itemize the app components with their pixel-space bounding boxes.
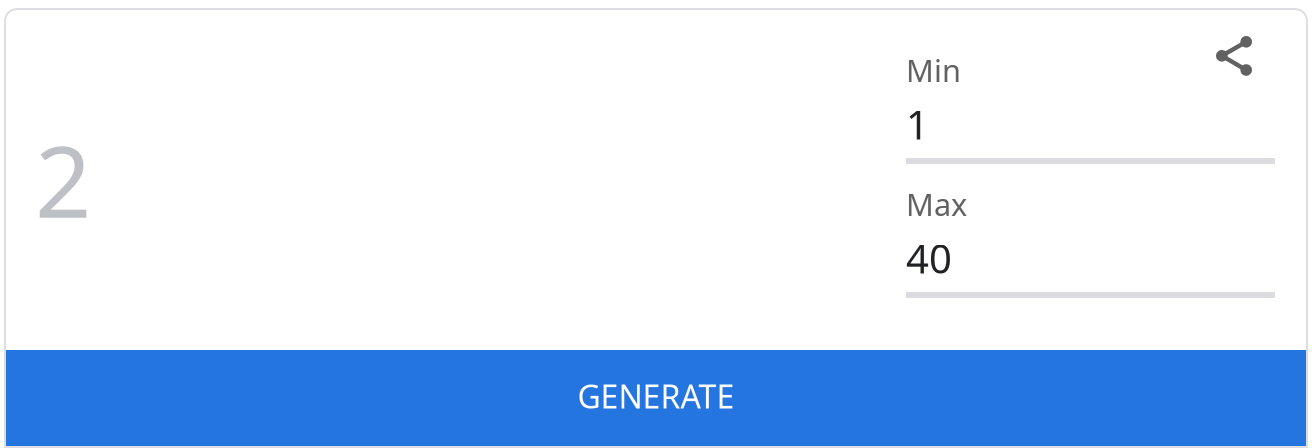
button[interactable]: Min [906,56,1275,164]
staticText: 1 [906,97,929,150]
staticText: Max [906,184,967,224]
button[interactable]: GENERATE [5,350,1307,447]
staticText: 40 [906,231,952,284]
staticText: 2 [35,114,91,245]
staticText: GENERATE [577,375,734,417]
staticText: Min [906,50,961,90]
button[interactable]: Share [1204,24,1264,88]
button[interactable]: Max [906,190,1275,298]
